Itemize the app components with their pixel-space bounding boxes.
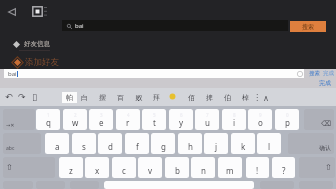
button[interactable]: d: [98, 133, 122, 154]
button[interactable]: b: [165, 157, 189, 178]
button[interactable]: !: [246, 157, 269, 178]
staticText: n: [201, 165, 206, 176]
button[interactable]: 8: [222, 109, 246, 130]
staticText: 完成: [323, 70, 334, 77]
button[interactable]: 6: [169, 109, 193, 130]
button[interactable]: 败: [130, 88, 146, 106]
button[interactable]: l: [257, 133, 281, 154]
staticText: k: [241, 141, 246, 152]
button[interactable]: 帕: [62, 92, 77, 103]
button[interactable]: s: [72, 133, 96, 154]
button[interactable]: 添加好友: [11, 55, 61, 69]
button[interactable]: 捭: [201, 88, 217, 106]
button[interactable]: ⇧: [299, 157, 335, 178]
button[interactable]: Undo: [3, 88, 14, 106]
button[interactable]: ⌫: [304, 109, 334, 130]
button[interactable]: g: [151, 133, 175, 154]
button[interactable]: 4: [116, 109, 140, 130]
button[interactable]: m: [218, 157, 242, 178]
staticText: 确认: [319, 144, 331, 152]
staticText: ↷: [18, 92, 26, 102]
button[interactable]: c: [112, 157, 136, 178]
staticText: q: [46, 117, 51, 128]
button[interactable]: 2: [63, 109, 87, 130]
staticText: 百: [117, 93, 124, 102]
button[interactable]: 搜索: [290, 21, 326, 32]
button[interactable]: bai: [4, 69, 304, 78]
button[interactable]: ?: [272, 157, 295, 178]
staticText: 摆: [99, 93, 106, 102]
staticText: →✕: [6, 122, 15, 128]
staticText: x: [95, 165, 100, 176]
staticText: bai: [75, 22, 84, 30]
staticText: ↶: [5, 92, 13, 102]
button[interactable]: 佰: [183, 88, 199, 106]
button[interactable]: 完成: [319, 79, 331, 87]
button[interactable]: Paste: [29, 88, 40, 106]
button[interactable]: 搜索: [309, 70, 320, 77]
button[interactable]: bai: [62, 20, 288, 31]
staticText: abc: [6, 145, 15, 152]
staticText: bai: [8, 70, 17, 78]
staticText: 搜索: [309, 70, 320, 77]
button[interactable]: 确认: [288, 133, 334, 154]
button[interactable]: a: [45, 133, 69, 154]
staticText: 1: [47, 112, 50, 118]
staticText: 白: [81, 93, 88, 102]
staticText: 佰: [188, 93, 195, 102]
button[interactable]: h: [178, 133, 202, 154]
staticText: h: [188, 141, 193, 152]
staticText: 好友信息: [24, 40, 50, 48]
button[interactable]: abc: [3, 133, 41, 154]
button[interactable]: 完成: [323, 70, 334, 77]
button[interactable]: 百: [112, 88, 128, 106]
button[interactable]: Redo: [16, 88, 27, 106]
button[interactable]: k: [231, 133, 255, 154]
button[interactable]: 9: [248, 109, 272, 130]
button[interactable]: Collapse: [260, 88, 272, 106]
button[interactable]: 摆: [94, 88, 110, 106]
staticText: y: [179, 117, 184, 128]
button[interactable]: x: [85, 157, 109, 178]
button[interactable]: 棹: [237, 88, 253, 106]
staticText: 9: [259, 112, 262, 118]
button[interactable]: key: [104, 181, 254, 189]
button[interactable]: n: [191, 157, 215, 178]
staticText: z: [69, 165, 73, 176]
staticText: 4: [127, 112, 130, 118]
button[interactable]: ⇧: [3, 157, 55, 178]
button[interactable]: j: [204, 133, 228, 154]
staticText: 捭: [206, 93, 213, 102]
button[interactable]: 白: [76, 88, 92, 106]
staticText: 8: [233, 112, 236, 118]
button[interactable]: Stop: [32, 6, 43, 17]
button[interactable]: z: [59, 157, 83, 178]
staticText: ⌫: [321, 120, 331, 128]
staticText: 6: [180, 112, 183, 118]
button[interactable]: v: [138, 157, 162, 178]
button[interactable]: 伯: [219, 88, 235, 106]
staticText: p: [285, 117, 290, 128]
staticText: 5: [153, 112, 156, 118]
staticText: i: [233, 117, 236, 128]
button[interactable]: 3: [89, 109, 113, 130]
button[interactable]: 1: [36, 109, 60, 130]
button[interactable]: 7: [195, 109, 219, 130]
button[interactable]: 5: [142, 109, 166, 130]
button[interactable]: More: [251, 88, 263, 106]
staticText: ⇧: [325, 163, 332, 172]
staticText: a: [55, 141, 60, 152]
staticText: 完成: [319, 79, 331, 87]
staticText: ᴧ: [264, 92, 268, 103]
button[interactable]: f: [125, 133, 149, 154]
button[interactable]: Back: [4, 4, 19, 19]
button[interactable]: 好友信息: [13, 38, 61, 50]
button[interactable]: 拜: [148, 88, 164, 106]
button[interactable]: 0: [275, 109, 299, 130]
button[interactable]: →✕: [3, 109, 35, 130]
